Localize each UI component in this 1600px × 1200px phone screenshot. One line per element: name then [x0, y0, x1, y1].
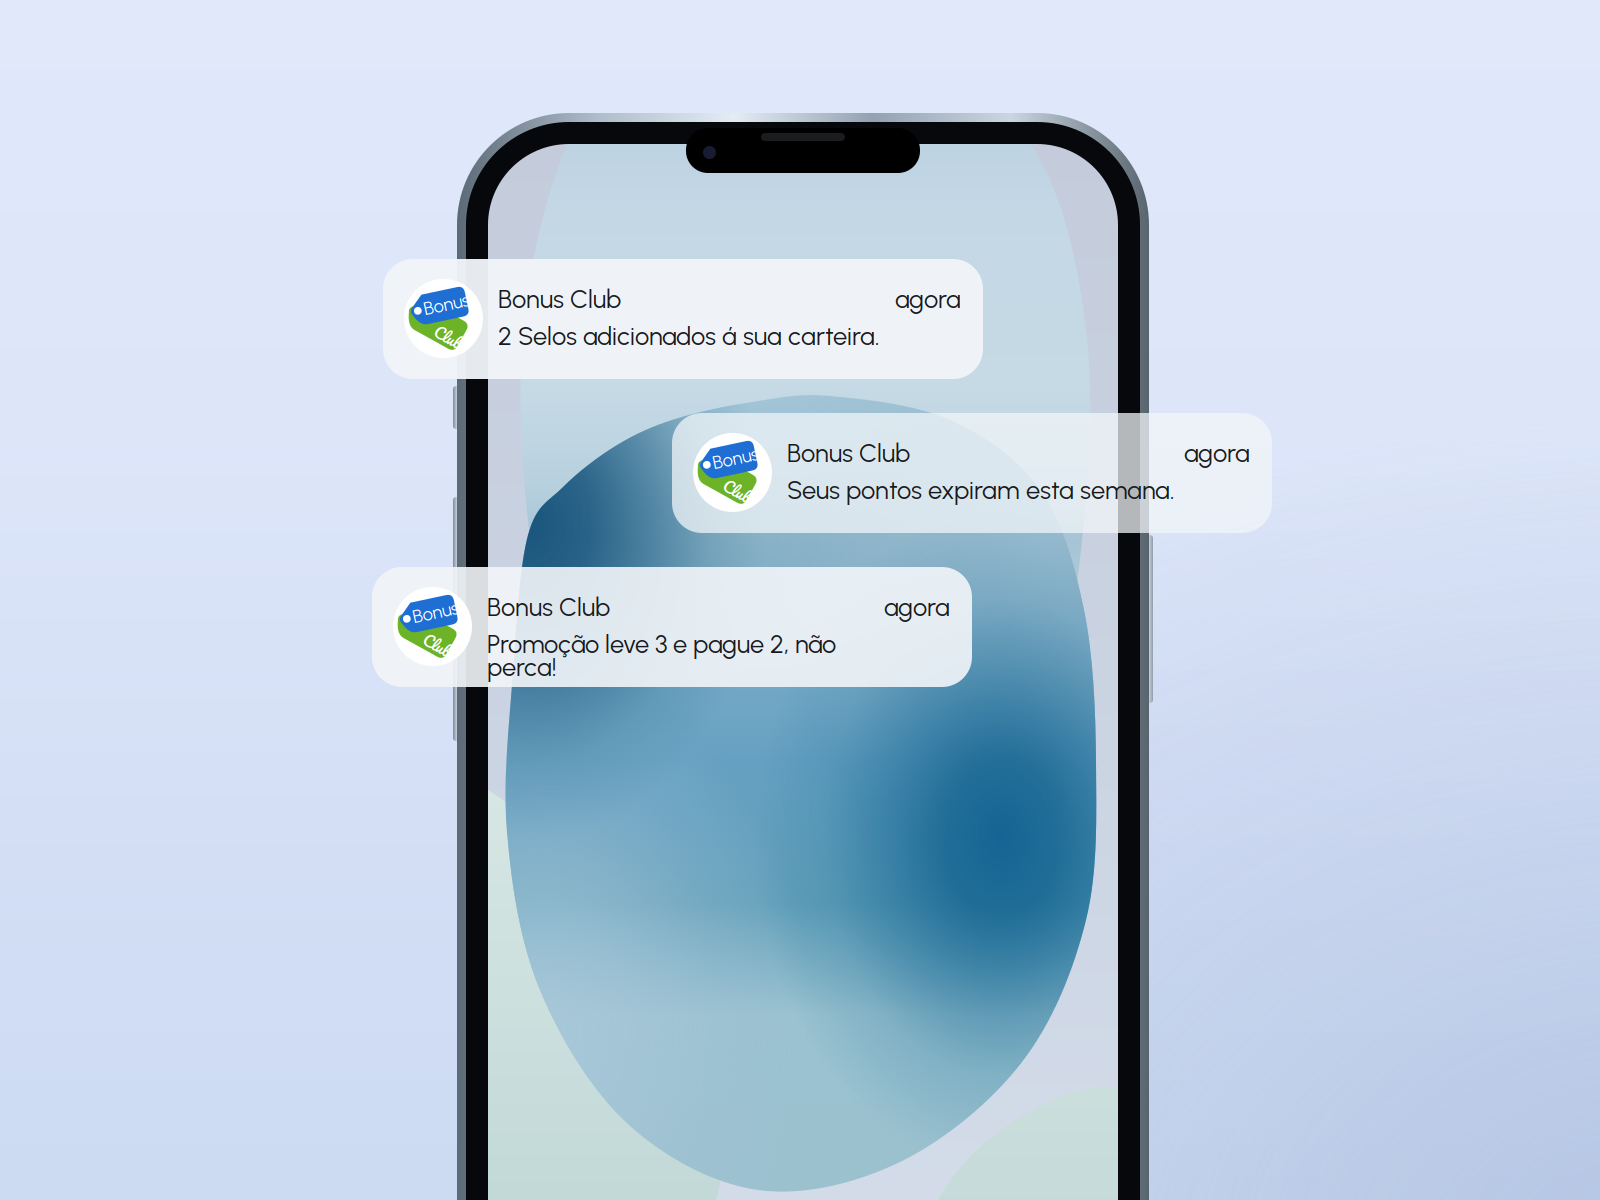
staticText: Bonus Club [487, 592, 610, 622]
staticText: agora [884, 592, 950, 622]
button[interactable]: Club [672, 413, 1272, 533]
button[interactable]: Club [383, 259, 983, 379]
staticText: Promoção leve 3 e pague 2, não [487, 629, 836, 659]
staticText: Bonus Club [787, 438, 910, 468]
staticText: Seus pontos expiram esta semana. [787, 475, 1175, 505]
staticText: Bonus [412, 603, 459, 625]
button[interactable]: Club [372, 567, 972, 687]
staticText: agora [1184, 438, 1250, 468]
staticText: 2 Selos adicionados á sua carteira. [498, 321, 880, 351]
staticText: Club [427, 624, 456, 651]
staticText: Bonus [712, 449, 759, 471]
staticText: agora [895, 284, 961, 314]
staticText: Club [438, 316, 467, 343]
staticText: perca! [487, 652, 557, 682]
staticText: Bonus [423, 295, 470, 317]
staticText: Club [727, 470, 756, 497]
staticText: Bonus Club [498, 284, 621, 314]
